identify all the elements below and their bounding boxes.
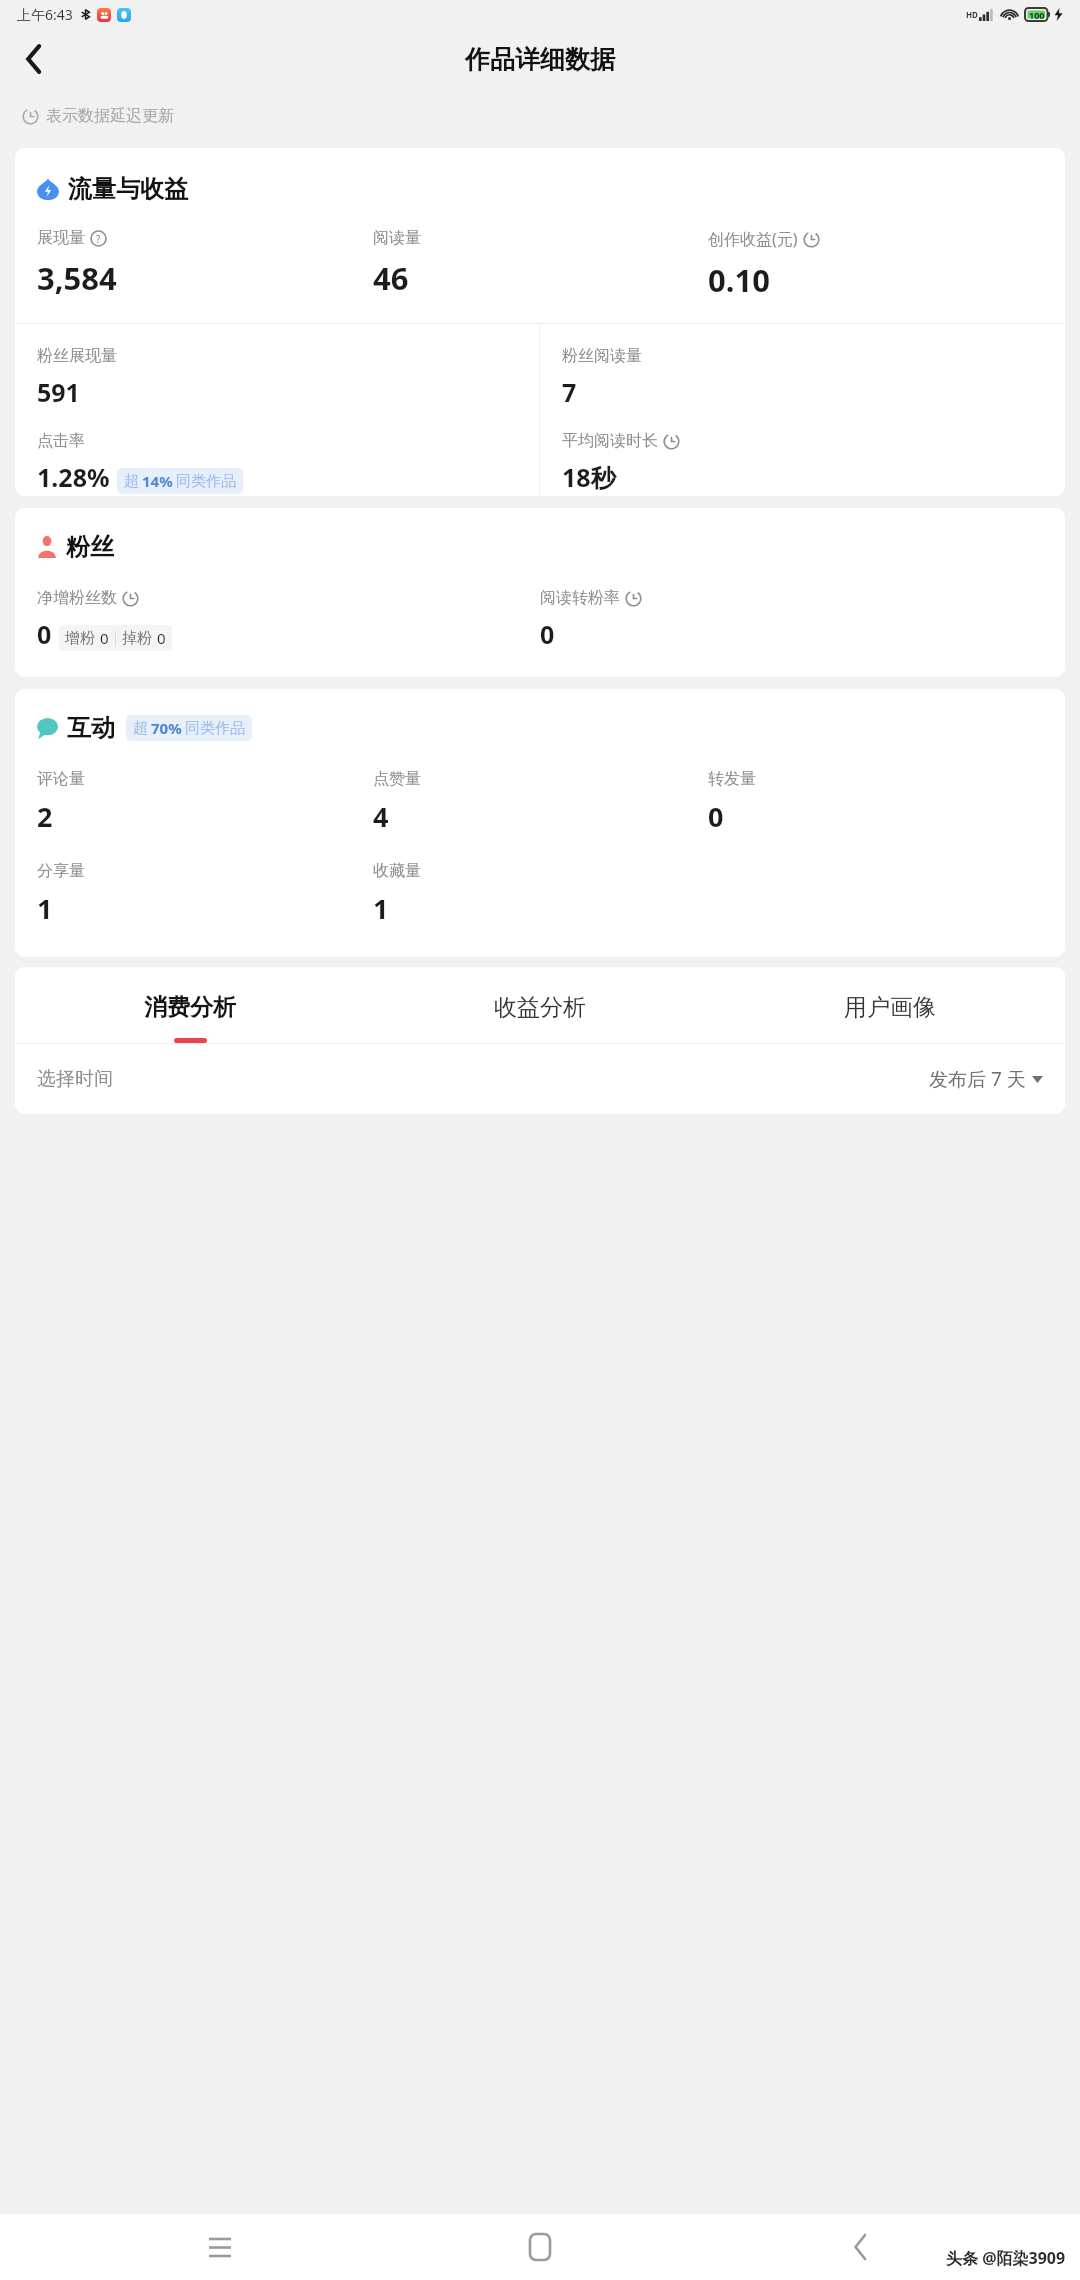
button[interactable]: 消费分析 — [15, 993, 365, 1043]
button[interactable]: 用户画像 — [715, 993, 1065, 1043]
staticText: 转发量 — [708, 769, 756, 789]
staticText: 同类作品 — [185, 719, 245, 738]
staticText: 表示数据延迟更新 — [46, 106, 174, 126]
button[interactable]: 超 — [124, 471, 236, 491]
staticText: 收益分析 — [494, 993, 586, 1022]
staticText: 2 — [37, 798, 53, 835]
staticText: 14% — [142, 471, 173, 491]
staticText: 18秒 — [562, 460, 616, 494]
staticText: 70% — [151, 718, 182, 738]
staticText: 消费分析 — [144, 993, 236, 1022]
button[interactable]: 发布后 7 天 — [929, 1066, 1043, 1092]
staticText: 0 — [540, 617, 555, 651]
staticText: 0.10 — [708, 259, 770, 301]
button[interactable]: 粉丝 — [15, 508, 1065, 677]
staticText: 展现量 — [37, 228, 85, 248]
staticText: 点击率 — [37, 431, 85, 451]
staticText: 粉丝展现量 — [37, 346, 117, 366]
staticText: 阅读转粉率 — [540, 588, 620, 608]
staticText: 用户画像 — [844, 993, 936, 1022]
staticText: 互动 — [67, 713, 115, 743]
staticText: 发布后 7 天 — [929, 1066, 1026, 1092]
staticText: 7 — [562, 375, 577, 409]
staticText: 同类作品 — [176, 472, 236, 491]
staticText: 点赞量 — [373, 769, 421, 789]
staticText: 平均阅读时长 — [562, 431, 658, 451]
staticText: 头条 @陌染3909 — [946, 2247, 1066, 2269]
button[interactable]: Back — [8, 33, 60, 85]
staticText: 4 — [373, 798, 389, 835]
staticText: 0 — [157, 628, 166, 648]
staticText: 100 — [1029, 9, 1045, 21]
staticText: 评论量 — [37, 769, 85, 789]
staticText: 0 — [37, 617, 52, 651]
button[interactable]: 收益分析 — [365, 993, 715, 1043]
staticText: HD — [966, 9, 978, 20]
staticText: 粉丝阅读量 — [562, 346, 642, 366]
button[interactable]: Recents — [60, 2214, 380, 2280]
staticText: 选择时间 — [37, 1067, 113, 1091]
staticText: 0 — [708, 798, 724, 835]
staticText: 掉粉 — [122, 629, 152, 648]
staticText: 超 — [133, 719, 148, 738]
button[interactable]: 超 — [133, 718, 245, 738]
staticText: 1 — [37, 890, 53, 927]
staticText: 上午6:43 — [17, 5, 73, 24]
staticText: 增粉 — [65, 629, 95, 648]
staticText: 作品详细数据 — [465, 44, 615, 75]
staticText: 591 — [37, 375, 80, 409]
staticText: 1 — [373, 890, 389, 927]
staticText: 流量与收益 — [68, 174, 188, 204]
button[interactable]: 流量与收益 — [15, 148, 1065, 496]
staticText: 46 — [373, 257, 409, 299]
staticText: 0 — [100, 628, 109, 648]
staticText: 3,584 — [37, 257, 117, 299]
staticText: 分享量 — [37, 861, 85, 881]
staticText: 收藏量 — [373, 861, 421, 881]
staticText: ? — [96, 232, 101, 246]
button[interactable]: Back — [700, 2214, 1020, 2280]
staticText: 阅读量 — [373, 228, 421, 248]
button[interactable]: Home — [380, 2214, 700, 2280]
staticText: 净增粉丝数 — [37, 588, 117, 608]
staticText: 超 — [124, 472, 139, 491]
staticText: 1.28% — [37, 460, 110, 494]
button[interactable]: 互动 — [15, 689, 1065, 957]
button[interactable]: 增粉 — [65, 628, 166, 648]
staticText: 创作收益(元) — [708, 228, 798, 250]
staticText: 粉丝 — [66, 532, 114, 562]
